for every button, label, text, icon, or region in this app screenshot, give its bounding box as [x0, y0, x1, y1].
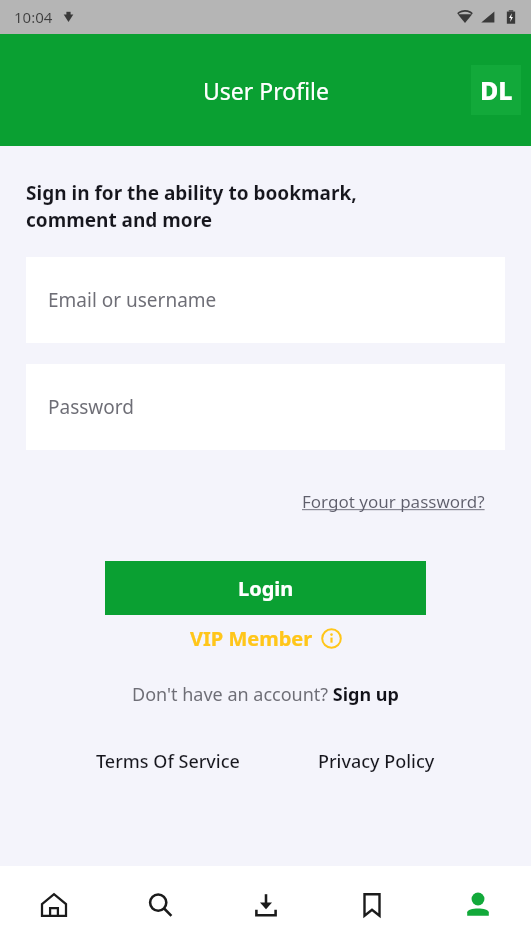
button[interactable]: Don't have an account? Sign up [128, 678, 403, 711]
staticText: User Profile [203, 75, 329, 106]
button[interactable]: Search [107, 866, 213, 944]
staticText: Sign in for the ability to bookmark, com… [26, 180, 357, 233]
button[interactable]: Bookmarks [319, 866, 425, 944]
button[interactable]: DL logo [471, 65, 521, 115]
staticText: Terms Of Service [96, 749, 240, 774]
button[interactable]: Email or username [26, 257, 505, 343]
button[interactable]: Downloads [213, 866, 319, 944]
button[interactable]: Terms Of Service [86, 743, 250, 780]
staticText: Don't have an account? Sign up [132, 682, 399, 707]
staticText: 10:04 [14, 7, 53, 27]
other: VIP information [321, 628, 342, 649]
staticText: Email or username [48, 287, 217, 313]
button[interactable]: Password [26, 364, 505, 450]
staticText: Password [48, 394, 134, 420]
button[interactable]: Forgot your password? [300, 486, 487, 517]
button[interactable]: Privacy Policy [308, 743, 445, 780]
staticText: Login [238, 575, 294, 602]
staticText: DL [480, 73, 513, 107]
button[interactable]: Profile [425, 866, 531, 944]
button[interactable]: Home [0, 866, 107, 944]
button[interactable]: VIP Member [0, 625, 531, 652]
staticText: Privacy Policy [318, 749, 435, 774]
button[interactable]: Login [105, 561, 426, 615]
staticText: Forgot your password? [302, 490, 485, 513]
staticText: VIP Member [190, 625, 313, 652]
